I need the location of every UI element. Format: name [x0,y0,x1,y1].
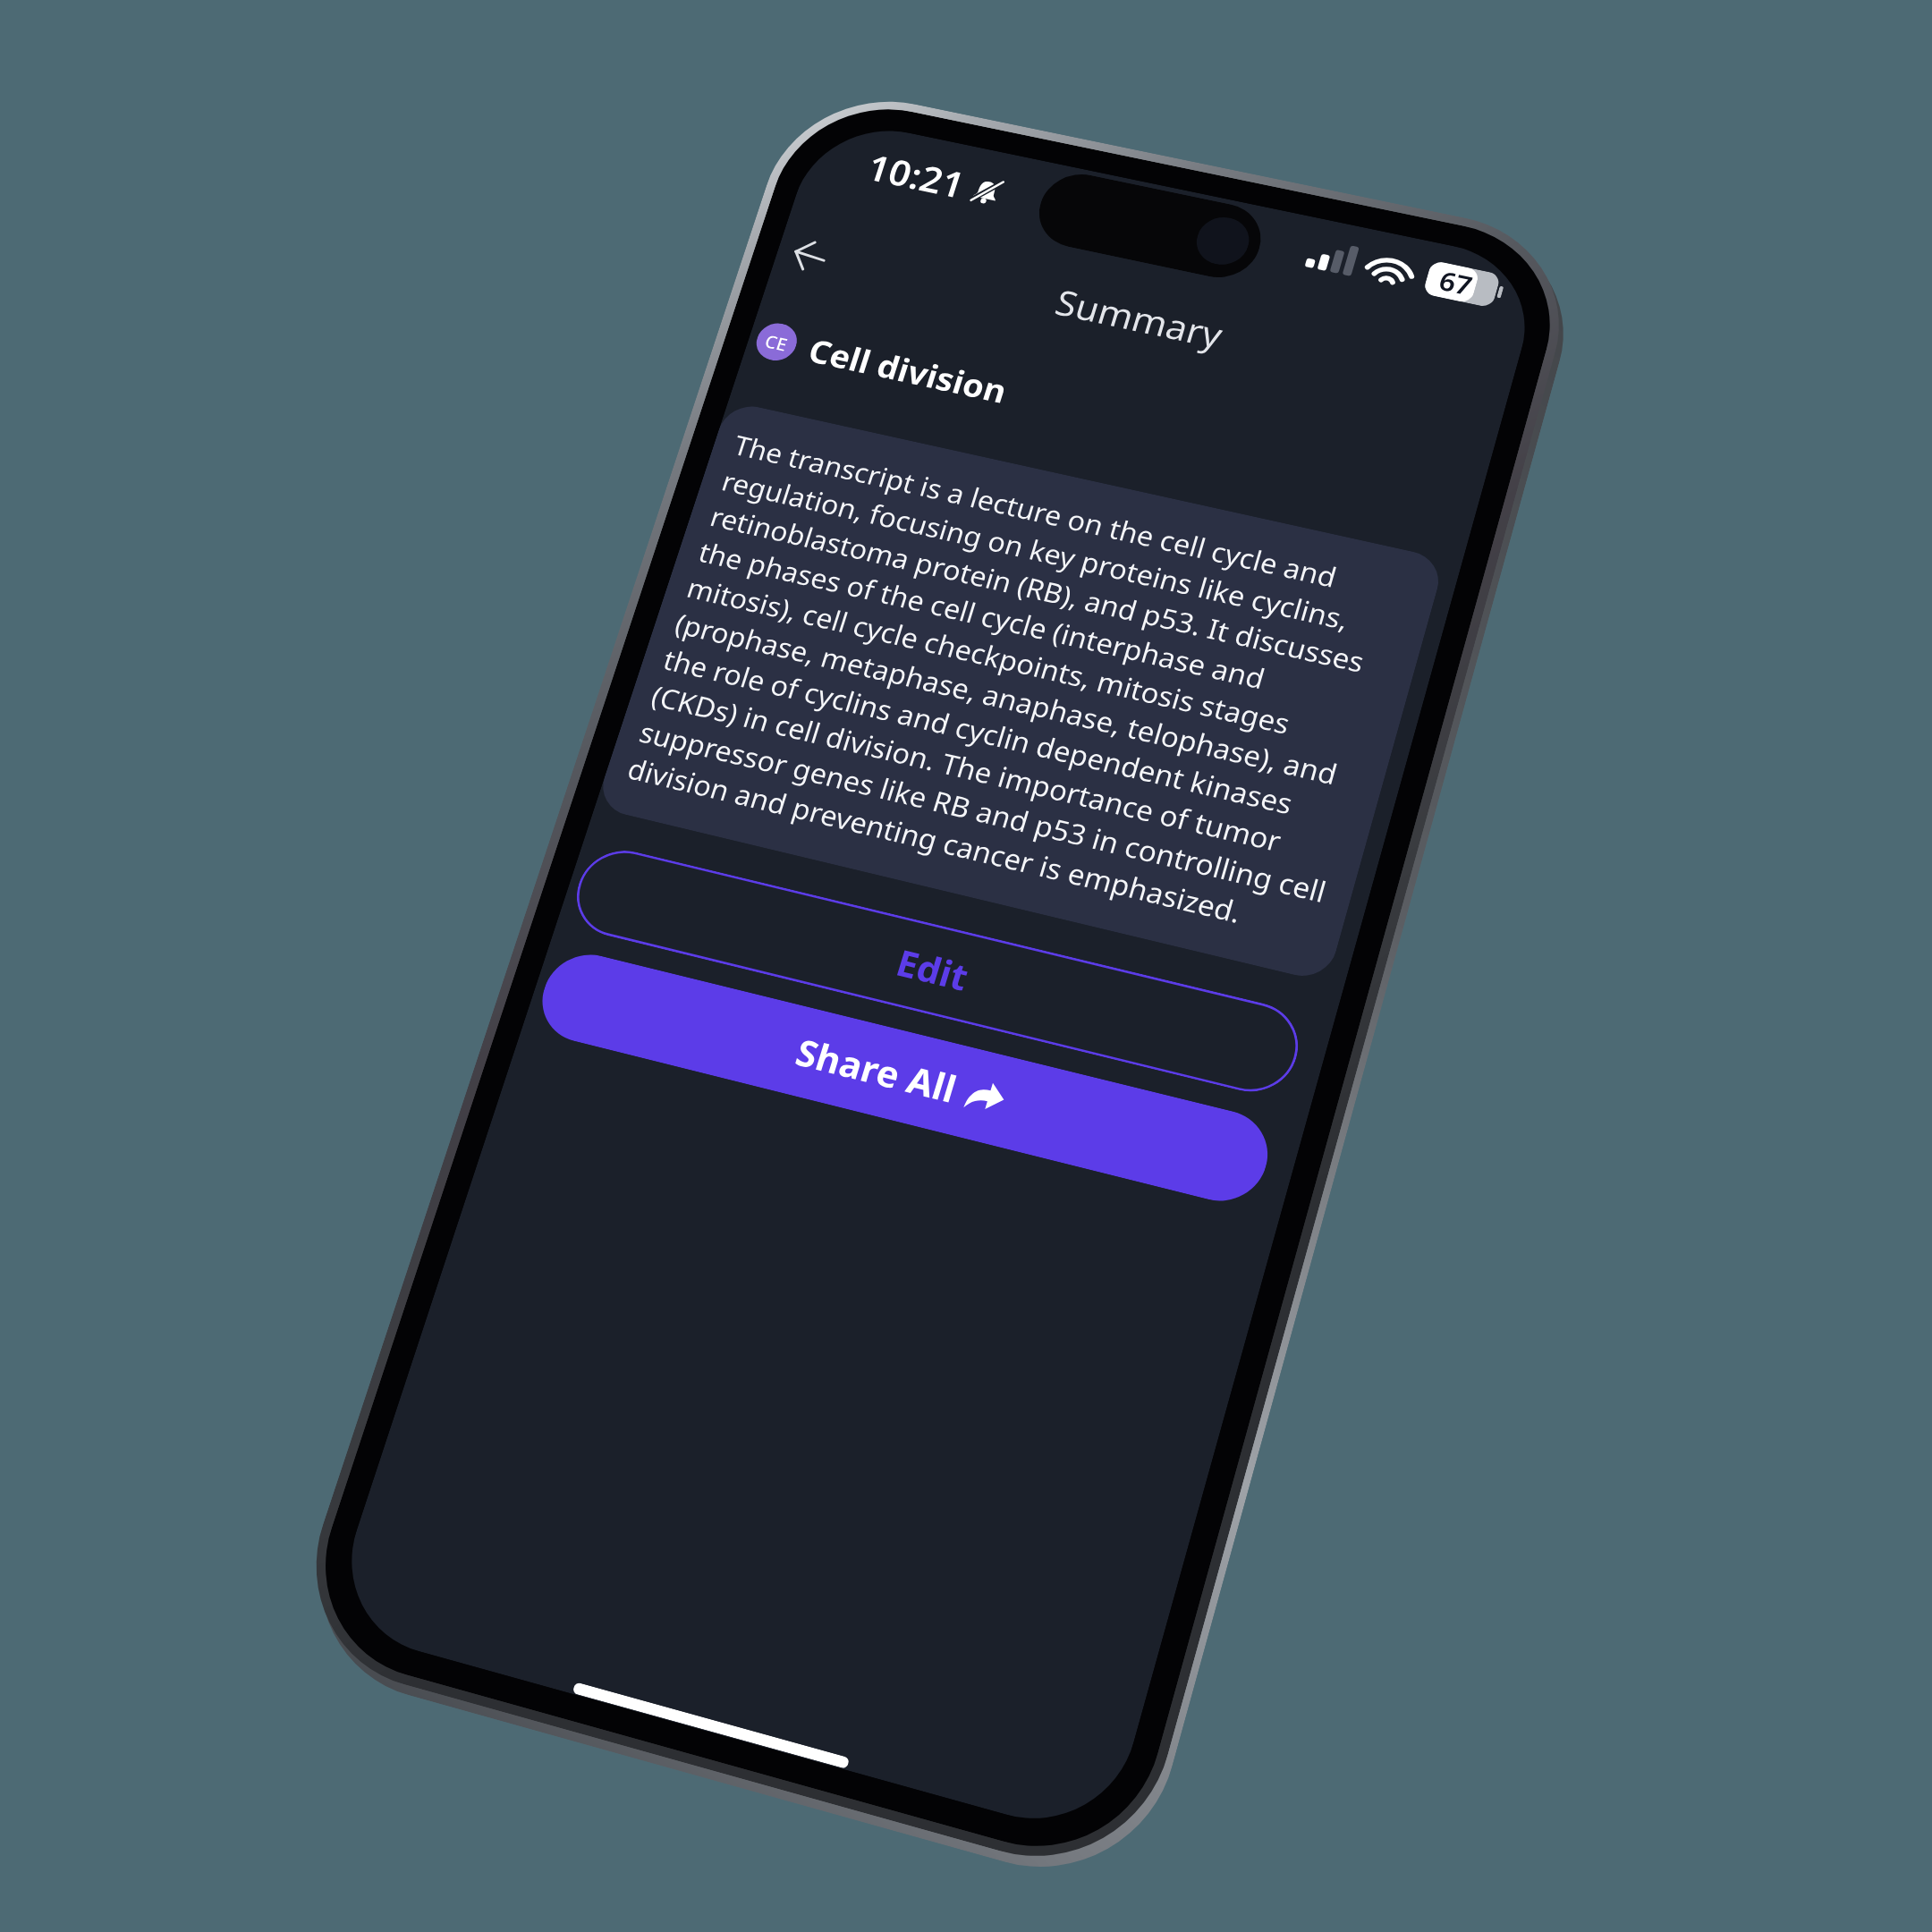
button[interactable]: Expand [1497,375,1514,415]
button[interactable]: Share All [531,946,1278,1211]
staticText: Share All [790,1027,963,1114]
button[interactable]: Edit [565,842,1309,1101]
staticText: Edit [891,937,975,1002]
staticText: Summary [773,219,1515,420]
staticText: 10:21 [861,143,972,209]
staticText: 67 [1435,263,1476,303]
staticText: Cell division [803,328,1013,412]
button[interactable]: Back [769,221,849,291]
staticText: The transcript is a lecture on the cell … [623,427,1419,950]
staticText: CE [762,329,791,356]
